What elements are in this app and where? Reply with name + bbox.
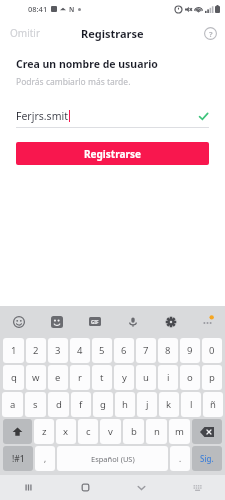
- button[interactable]: ,: [35, 446, 55, 471]
- staticText: j: [146, 398, 149, 411]
- button[interactable]: 2: [26, 338, 46, 363]
- staticText: Podrás cambiarlo más tarde.: [16, 76, 131, 88]
- staticText: t: [100, 371, 104, 384]
- button[interactable]: o: [180, 365, 200, 390]
- button[interactable]: m: [169, 419, 190, 444]
- staticText: o: [187, 371, 193, 384]
- staticText: q: [11, 371, 17, 384]
- button[interactable]: Mayúsculas: [3, 419, 32, 444]
- button[interactable]: ñ: [203, 392, 223, 417]
- button[interactable]: a: [2, 392, 23, 417]
- button[interactable]: c: [78, 419, 98, 444]
- button[interactable]: k: [159, 392, 179, 417]
- staticText: 1: [11, 344, 17, 357]
- staticText: 2: [33, 344, 39, 357]
- button[interactable]: 4: [70, 338, 90, 363]
- button[interactable]: d: [48, 392, 69, 417]
- button[interactable]: y: [114, 365, 134, 390]
- staticText: u: [143, 371, 149, 384]
- staticText: Registrarse: [84, 147, 141, 161]
- button[interactable]: w: [26, 365, 46, 390]
- button[interactable]: Registrarse: [16, 142, 209, 165]
- staticText: k: [166, 398, 172, 411]
- button[interactable]: l: [181, 392, 201, 417]
- staticText: Registrarse: [81, 26, 144, 41]
- button[interactable]: p: [202, 365, 222, 390]
- staticText: Sig.: [200, 453, 214, 464]
- staticText: 5: [99, 344, 105, 357]
- staticText: v: [108, 425, 113, 438]
- button[interactable]: j: [137, 392, 157, 417]
- staticText: x: [63, 425, 69, 438]
- button[interactable]: Emoji: [0, 306, 38, 337]
- staticText: ñ: [210, 398, 216, 411]
- button[interactable]: Ajustes: [152, 306, 190, 337]
- button[interactable]: Ocultar teclado: [113, 475, 169, 500]
- button[interactable]: h: [115, 392, 135, 417]
- staticText: c: [86, 425, 91, 438]
- button[interactable]: f: [71, 392, 91, 417]
- staticText: Crea un nombre de usuario: [16, 57, 158, 71]
- button[interactable]: Más: [190, 306, 225, 337]
- button[interactable]: 0: [202, 338, 222, 363]
- button[interactable]: n: [146, 419, 167, 444]
- staticText: m: [175, 425, 184, 438]
- button[interactable]: u: [136, 365, 156, 390]
- button[interactable]: 5: [92, 338, 112, 363]
- button[interactable]: 6: [114, 338, 134, 363]
- staticText: 6: [121, 344, 127, 357]
- staticText: 9: [187, 344, 193, 357]
- button[interactable]: Español (US): [57, 446, 168, 471]
- button[interactable]: GIF: [76, 306, 114, 337]
- button[interactable]: Omitir: [0, 20, 51, 46]
- button[interactable]: b: [123, 419, 144, 444]
- staticText: g: [100, 398, 106, 411]
- button[interactable]: z: [34, 419, 54, 444]
- button[interactable]: q: [3, 365, 24, 390]
- staticText: ,: [44, 453, 47, 464]
- staticText: n: [154, 425, 160, 438]
- button[interactable]: 8: [158, 338, 178, 363]
- other: Válido: [198, 111, 209, 122]
- staticText: Omitir: [10, 26, 41, 40]
- button[interactable]: v: [100, 419, 121, 444]
- button[interactable]: Ayuda: [196, 27, 225, 40]
- button[interactable]: 9: [180, 338, 200, 363]
- staticText: l: [190, 398, 193, 411]
- button[interactable]: 1: [3, 338, 24, 363]
- button[interactable]: e: [48, 365, 68, 390]
- staticText: !#1: [12, 453, 25, 465]
- button[interactable]: .: [170, 446, 190, 471]
- button[interactable]: !#1: [3, 446, 33, 471]
- button[interactable]: Micrófono: [114, 306, 152, 337]
- button[interactable]: Sig.: [192, 446, 222, 471]
- button[interactable]: s: [25, 392, 46, 417]
- staticText: h: [122, 398, 128, 411]
- staticText: .: [179, 453, 182, 464]
- button[interactable]: Stickers: [38, 306, 76, 337]
- staticText: i: [167, 371, 170, 384]
- button[interactable]: Teclado: [169, 475, 225, 500]
- staticText: d: [56, 398, 62, 411]
- button[interactable]: 7: [136, 338, 156, 363]
- staticText: y: [122, 371, 127, 384]
- button[interactable]: i: [158, 365, 178, 390]
- staticText: r: [78, 371, 82, 384]
- staticText: 8: [165, 344, 171, 357]
- button[interactable]: g: [93, 392, 113, 417]
- staticText: ?: [209, 29, 213, 39]
- staticText: b: [131, 425, 137, 438]
- staticText: Español (US): [91, 454, 135, 464]
- button[interactable]: x: [56, 419, 76, 444]
- staticText: Ferjrs.smit: [16, 109, 68, 123]
- staticText: 0: [209, 344, 215, 357]
- button[interactable]: t: [92, 365, 112, 390]
- button[interactable]: 3: [48, 338, 68, 363]
- button[interactable]: Borrar: [192, 419, 222, 444]
- staticText: 08:41: [28, 4, 48, 14]
- button[interactable]: r: [70, 365, 90, 390]
- button[interactable]: Recientes: [0, 475, 57, 500]
- staticText: N: [69, 5, 75, 14]
- staticText: GIF: [91, 319, 99, 325]
- button[interactable]: Inicio: [57, 475, 113, 500]
